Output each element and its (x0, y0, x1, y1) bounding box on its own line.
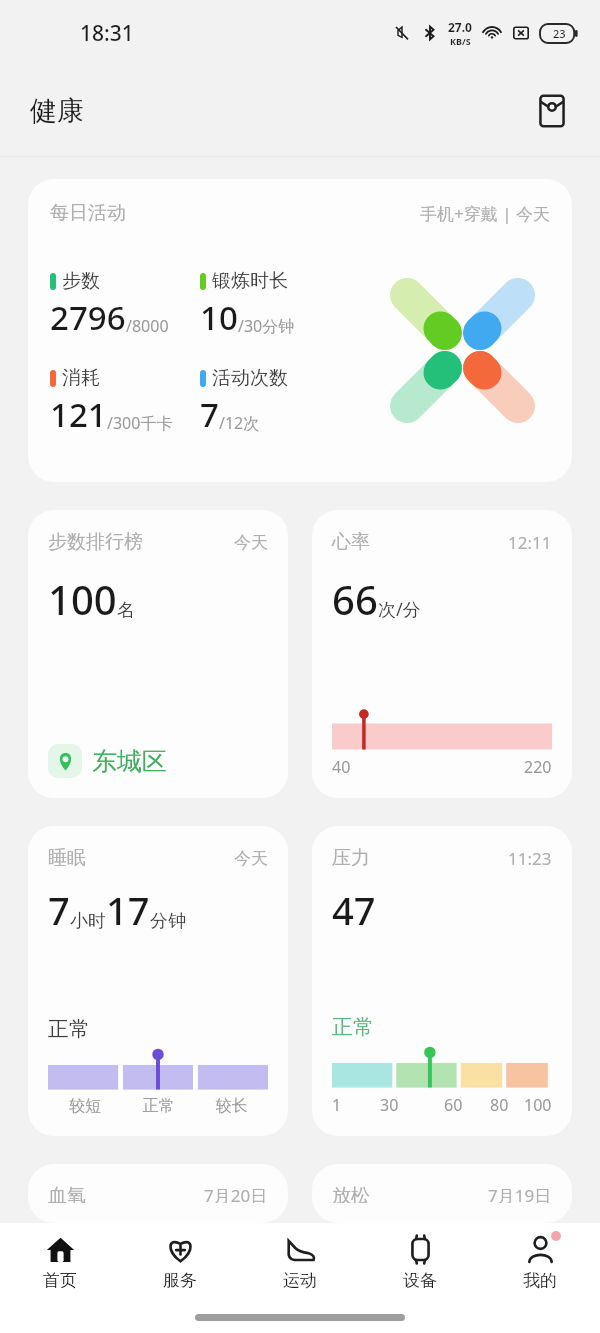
staticText: KB/S (450, 35, 471, 47)
staticText: 60 (444, 1094, 463, 1116)
staticText: /30分钟 (238, 315, 295, 337)
staticText: 放松 (332, 1184, 370, 1203)
staticText: 100 (48, 572, 117, 626)
staticText: 30 (380, 1094, 399, 1116)
staticText: 步数排行榜 (48, 530, 143, 554)
staticText: 11:23 (508, 847, 552, 870)
staticText: 10 (200, 295, 238, 340)
staticText: 较短 (48, 1096, 122, 1116)
staticText: 23 (553, 26, 566, 41)
staticText: 正常 (332, 1014, 374, 1040)
button[interactable]: 血氧 (28, 1164, 288, 1223)
staticText: 步数 (62, 269, 100, 293)
staticText: 27.0 (448, 19, 472, 35)
staticText: /8000 (126, 315, 169, 337)
button[interactable]: 设备 (360, 1223, 480, 1301)
staticText: 设备 (403, 1270, 437, 1291)
staticText: 121 (50, 392, 107, 437)
staticText: 66 (332, 572, 378, 626)
staticText: 220 (524, 756, 552, 778)
button[interactable]: 我的 (480, 1223, 600, 1301)
button[interactable]: 压力 (312, 826, 572, 1136)
button[interactable]: 服务 (120, 1223, 240, 1301)
staticText: 7月20日 (204, 1184, 268, 1203)
staticText: 1 (332, 1094, 342, 1116)
button[interactable]: 每日活动 (28, 179, 572, 482)
staticText: 18:31 (80, 19, 134, 48)
staticText: 运动 (283, 1270, 317, 1291)
staticText: 今天 (234, 848, 268, 869)
staticText: 睡眠 (48, 846, 86, 870)
staticText: 次/分 (378, 597, 421, 622)
staticText: /12次 (219, 412, 260, 434)
staticText: 2796 (50, 295, 126, 340)
staticText: 消耗 (62, 366, 100, 390)
staticText: /300千卡 (107, 412, 173, 434)
button[interactable]: 步数排行榜 (28, 510, 288, 798)
button[interactable]: 首页 (0, 1223, 120, 1301)
staticText: 7月19日 (488, 1184, 552, 1203)
staticText: 较长 (195, 1096, 268, 1116)
staticText: 7 (200, 392, 219, 437)
staticText: 首页 (43, 1270, 77, 1291)
staticText: 80 (490, 1094, 509, 1116)
staticText: 锻炼时长 (212, 269, 288, 293)
staticText: 今天 (234, 532, 268, 553)
staticText: 分钟 (150, 910, 186, 933)
staticText: 正常 (48, 1016, 90, 1042)
staticText: 手机+穿戴 | 今天 (420, 202, 550, 225)
staticText: 47 (332, 884, 376, 936)
staticText: 压力 (332, 846, 370, 870)
button[interactable]: 运动 (240, 1223, 360, 1301)
staticText: 东城区 (92, 746, 167, 777)
staticText: 正常 (122, 1096, 195, 1116)
staticText: 我的 (523, 1270, 557, 1291)
staticText: 12:11 (508, 531, 552, 554)
staticText: 100 (524, 1094, 552, 1116)
staticText: 40 (332, 756, 351, 778)
button[interactable]: 心率 (312, 510, 572, 798)
button[interactable]: 放松 (312, 1164, 572, 1223)
staticText: 服务 (163, 1270, 197, 1291)
staticText: 每日活动 (50, 201, 126, 225)
staticText: 名 (117, 599, 135, 622)
staticText: 17 (106, 884, 150, 936)
staticText: 健康 (30, 94, 84, 128)
staticText: 心率 (332, 530, 370, 554)
button[interactable]: 消息 (528, 87, 576, 135)
button[interactable]: 睡眠 (28, 826, 288, 1136)
staticText: 活动次数 (212, 366, 288, 390)
staticText: 血氧 (48, 1184, 86, 1203)
staticText: 小时 (70, 910, 106, 933)
staticText: 7 (48, 884, 70, 936)
